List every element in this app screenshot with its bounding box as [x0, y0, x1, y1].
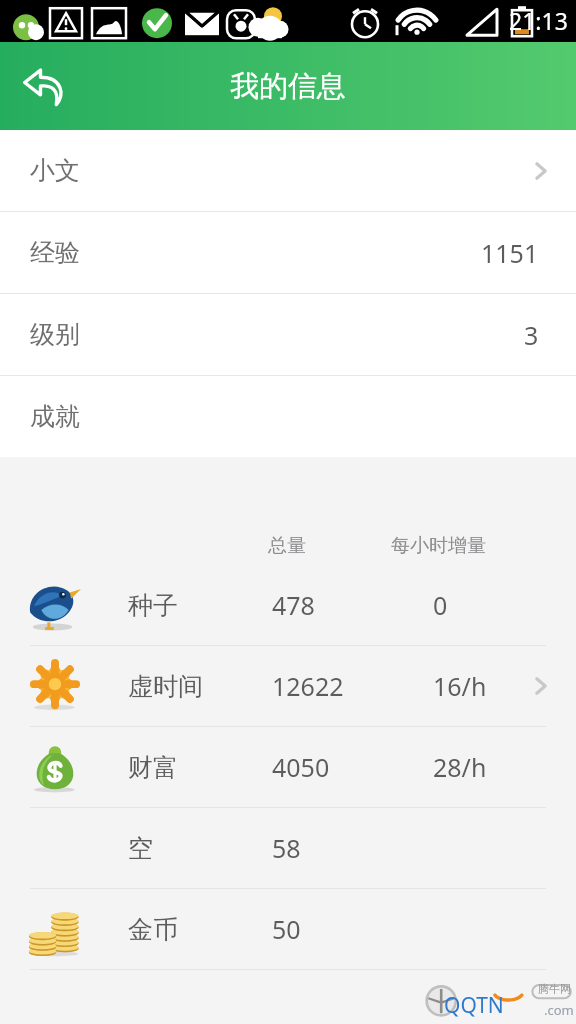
staticText: 478 [272, 588, 315, 622]
staticText: 空 [128, 833, 153, 864]
staticText: 虚时间 [128, 671, 203, 702]
staticText: 成就 [30, 401, 80, 432]
staticText: 经验 [30, 237, 80, 268]
staticText: 总量 [268, 534, 306, 558]
button[interactable]: 经验 [0, 212, 576, 293]
staticText: 每小时增量 [391, 534, 486, 558]
staticText: 金币 [128, 914, 178, 945]
button[interactable]: 种子 [0, 565, 576, 645]
staticText: 小文 [30, 155, 80, 186]
staticText: 21:13 [509, 5, 568, 36]
staticText: 腾牛网 [538, 982, 571, 996]
button[interactable]: 虚时间 [0, 646, 576, 726]
button[interactable]: 空 [0, 808, 576, 888]
staticText: 级别 [30, 319, 80, 350]
staticText: 0 [433, 588, 448, 622]
button[interactable]: 财富 [0, 727, 576, 807]
staticText: 3 [524, 318, 539, 352]
staticText: 50 [272, 912, 301, 946]
button[interactable]: 成就 [0, 376, 576, 457]
staticText: 16/h [433, 669, 487, 703]
staticText: 种子 [128, 590, 178, 621]
staticText: .com [544, 1001, 574, 1019]
button[interactable]: 小文 [0, 130, 576, 211]
staticText: 1151 [481, 236, 539, 270]
button[interactable]: 级别 [0, 294, 576, 375]
button[interactable]: 金币 [0, 889, 576, 969]
staticText: 财富 [128, 752, 178, 783]
staticText: 12622 [272, 669, 344, 703]
staticText: 我的信息 [230, 68, 346, 105]
staticText: QQTN [444, 991, 504, 1020]
staticText: 4050 [272, 750, 330, 784]
staticText: 58 [272, 831, 301, 865]
button[interactable]: Back [10, 52, 78, 120]
staticText: 28/h [433, 750, 487, 784]
